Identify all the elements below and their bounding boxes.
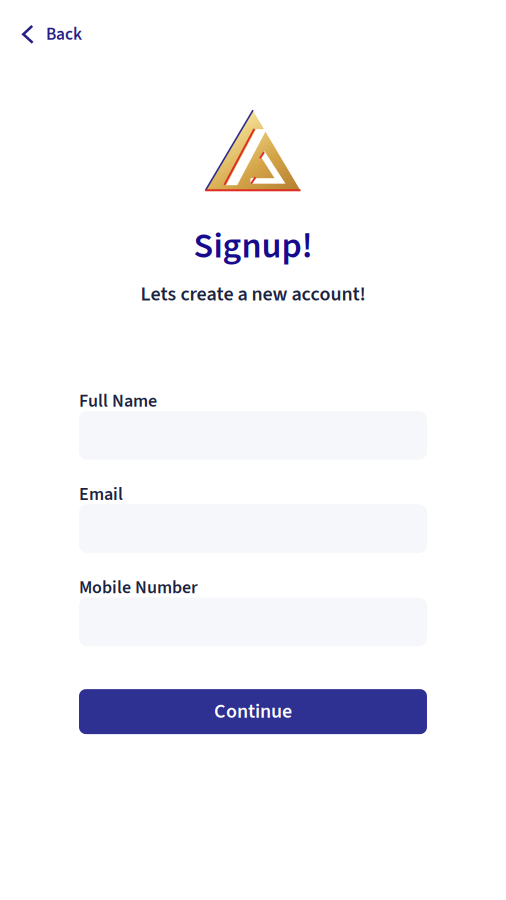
staticText: Mobile Number (79, 575, 198, 600)
staticText: Back (46, 22, 82, 47)
staticText: Continue (214, 697, 292, 726)
staticText: Lets create a new account! (140, 280, 365, 308)
staticText: Signup! (193, 221, 312, 272)
button[interactable]: Continue (79, 689, 427, 734)
staticText: Email (79, 482, 123, 507)
staticText: Full Name (79, 388, 157, 414)
button[interactable]: Back (0, 0, 98, 57)
